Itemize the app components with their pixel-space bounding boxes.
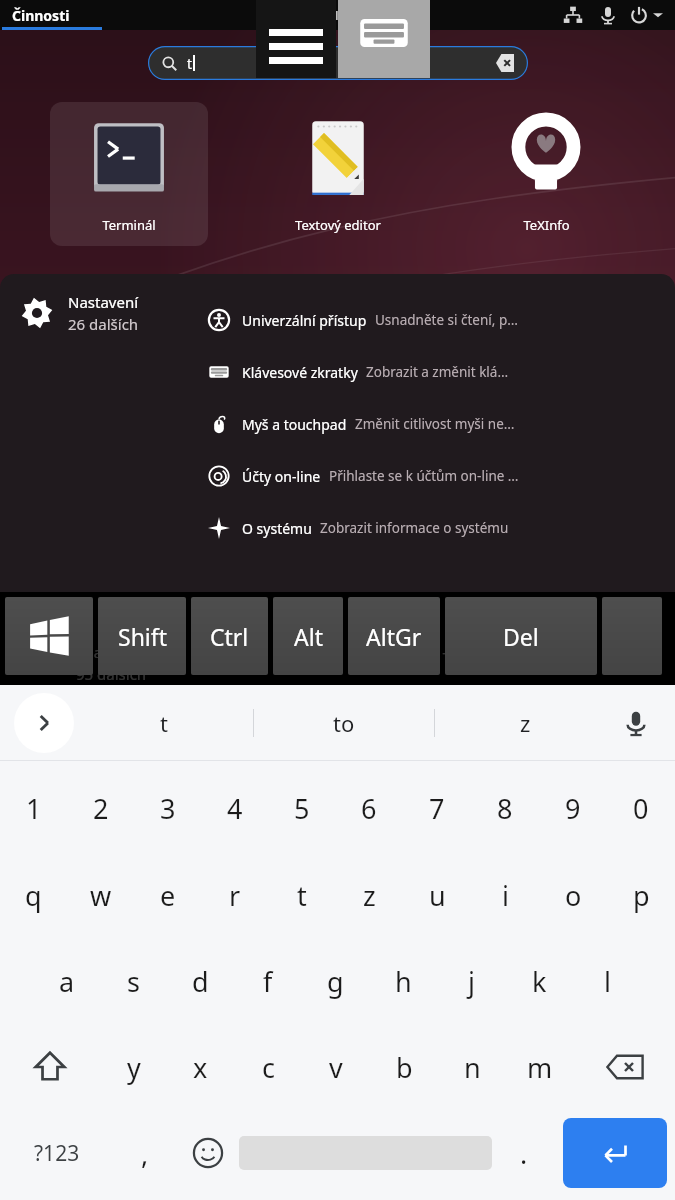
- button[interactable]: Enter: [563, 1118, 667, 1188]
- button[interactable]: c: [234, 1024, 302, 1110]
- button[interactable]: z: [435, 685, 615, 760]
- button[interactable]: u: [403, 852, 471, 938]
- button[interactable]: 5: [268, 765, 335, 852]
- button[interactable]: Účty on-line: [208, 450, 661, 502]
- staticText: .: [520, 1135, 528, 1172]
- staticText: 5: [294, 790, 310, 827]
- button[interactable]: Činnosti: [12, 6, 70, 25]
- button[interactable]: s: [100, 938, 167, 1024]
- button[interactable]: w: [67, 852, 134, 938]
- button[interactable]: ?123: [0, 1110, 113, 1196]
- button[interactable]: d: [167, 938, 234, 1024]
- button[interactable]: Toggle keyboard: [338, 0, 430, 78]
- staticText: 9. května 11:57: [266, 6, 366, 24]
- button[interactable]: .: [492, 1110, 555, 1196]
- button[interactable]: 8: [471, 765, 539, 852]
- button[interactable]: o: [539, 852, 607, 938]
- button[interactable]: p: [607, 852, 675, 938]
- button[interactable]: y: [100, 1024, 167, 1110]
- button[interactable]: to: [254, 685, 434, 760]
- button[interactable]: z: [335, 852, 403, 938]
- button[interactable]: Del: [445, 597, 597, 675]
- button[interactable]: ,: [113, 1110, 176, 1196]
- button[interactable]: h: [369, 938, 437, 1024]
- button[interactable]: System menu: [630, 6, 663, 24]
- button[interactable]: 4: [201, 765, 268, 852]
- button[interactable]: j: [437, 938, 505, 1024]
- button[interactable]: Nastavení: [18, 292, 208, 334]
- button[interactable]: 2: [67, 765, 134, 852]
- button[interactable]: l: [573, 938, 641, 1024]
- button[interactable]: b: [370, 1024, 438, 1110]
- staticText: l: [604, 963, 611, 1000]
- button[interactable]: n: [438, 1024, 506, 1110]
- staticText: j: [468, 963, 475, 1000]
- button[interactable]: t: [74, 685, 253, 760]
- button[interactable]: More suggestions: [14, 693, 74, 753]
- staticText: Usnadněte si čtení, p…: [375, 311, 518, 329]
- button[interactable]: m: [506, 1024, 574, 1110]
- other: Clear search: [496, 54, 514, 72]
- staticText: 95 dalších: [76, 664, 147, 684]
- button[interactable]: Terminál: [50, 102, 208, 246]
- staticText: i: [502, 877, 509, 914]
- button[interactable]: g: [301, 938, 369, 1024]
- button[interactable]: Emoji: [176, 1110, 239, 1196]
- button[interactable]: q: [0, 852, 67, 938]
- staticText: f: [263, 963, 273, 1000]
- button[interactable]: t: [148, 46, 528, 80]
- button[interactable]: i: [471, 852, 539, 938]
- button[interactable]: [602, 597, 662, 675]
- button[interactable]: t: [268, 852, 335, 938]
- button[interactable]: a: [33, 938, 100, 1024]
- button[interactable]: Microphone: [598, 5, 618, 25]
- button[interactable]: k: [505, 938, 573, 1024]
- button[interactable]: TeXInfo: [467, 102, 625, 246]
- staticText: g: [327, 963, 344, 1000]
- button[interactable]: Textový editor: [259, 102, 417, 246]
- staticText: Zobrazit a změnit klá…: [366, 363, 509, 381]
- staticText: Klávesové zkratky: [242, 363, 358, 382]
- staticText: z: [520, 708, 531, 738]
- staticText: Digit Two U+32, 2: Digit Two: [282, 648, 470, 667]
- button[interactable]: Menu: [256, 0, 336, 78]
- button[interactable]: r: [201, 852, 268, 938]
- staticText: t: [160, 708, 168, 738]
- button[interactable]: Voice input: [615, 702, 657, 744]
- button[interactable]: Super key: [5, 597, 93, 675]
- staticText: p: [633, 877, 650, 914]
- button[interactable]: O systému: [208, 502, 661, 554]
- staticText: Shift: [118, 621, 167, 652]
- staticText: e: [160, 877, 176, 914]
- staticText: O systému: [242, 519, 312, 538]
- button[interactable]: Shift: [0, 1024, 100, 1110]
- button[interactable]: Shift: [98, 597, 186, 675]
- button[interactable]: AltGr: [348, 597, 440, 675]
- button[interactable]: 9: [539, 765, 607, 852]
- button[interactable]: Alt: [273, 597, 343, 675]
- staticText: Účty on-line: [242, 467, 321, 486]
- button[interactable]: 6: [335, 765, 403, 852]
- button[interactable]: Space: [239, 1122, 492, 1184]
- button[interactable]: 0: [607, 765, 675, 852]
- staticText: o: [565, 877, 582, 914]
- staticText: z: [363, 877, 376, 914]
- button[interactable]: Backspace: [574, 1024, 675, 1110]
- button[interactable]: 1: [0, 765, 67, 852]
- button[interactable]: Myš a touchpad: [208, 398, 661, 450]
- button[interactable]: Network: [562, 4, 584, 26]
- button[interactable]: 7: [403, 765, 471, 852]
- button[interactable]: 3: [134, 765, 201, 852]
- button[interactable]: e: [134, 852, 201, 938]
- button[interactable]: x: [167, 1024, 234, 1110]
- button[interactable]: Ctrl: [191, 597, 268, 675]
- staticText: 3: [160, 790, 176, 827]
- staticText: 0: [633, 790, 649, 827]
- button[interactable]: v: [302, 1024, 370, 1110]
- button[interactable]: f: [234, 938, 301, 1024]
- staticText: x: [193, 1049, 208, 1086]
- staticText: h: [395, 963, 412, 1000]
- staticText: Zobrazit informace o systému: [320, 519, 509, 537]
- button[interactable]: Klávesové zkratky: [208, 346, 661, 398]
- button[interactable]: Univerzální přístup: [208, 294, 661, 346]
